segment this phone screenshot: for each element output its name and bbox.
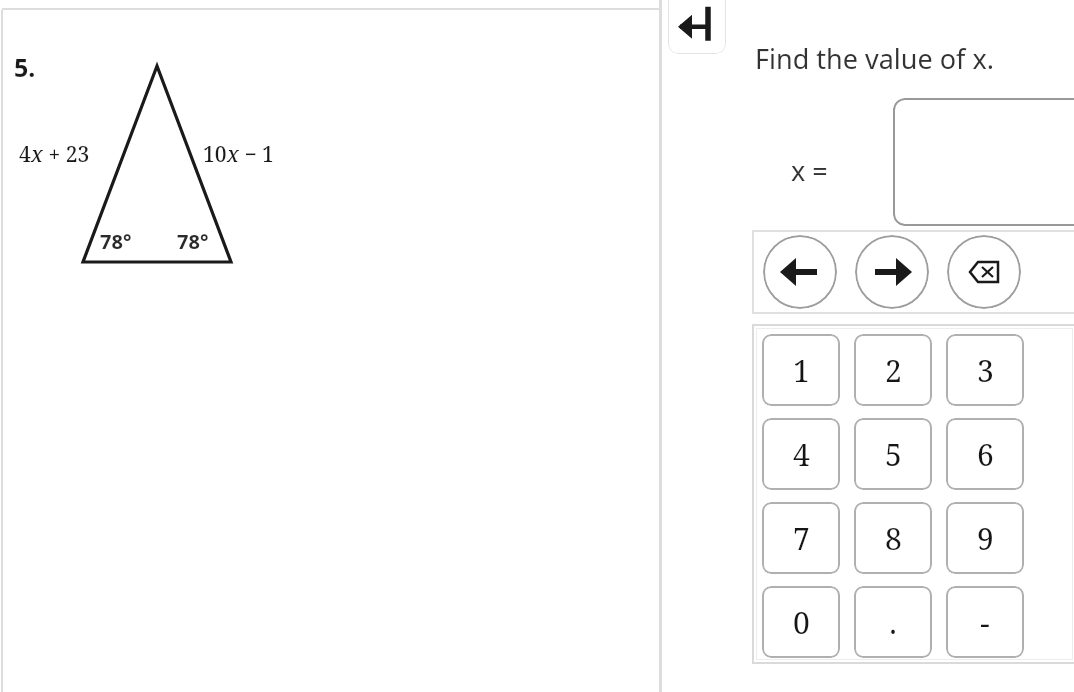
staticText: + 23 [43, 140, 90, 169]
staticText: 5. [14, 50, 36, 84]
staticText: 78° [100, 228, 132, 255]
staticText: 9 [977, 518, 994, 559]
button[interactable]: 4 [762, 418, 840, 490]
button[interactable]: 2 [854, 334, 932, 406]
staticText: x [31, 140, 43, 169]
staticText: 78° [177, 228, 209, 255]
staticText: . [889, 602, 897, 643]
staticText: 7 [793, 518, 810, 559]
button[interactable]: - [946, 586, 1024, 658]
staticText: 6 [977, 434, 994, 475]
staticText: 8 [885, 518, 902, 559]
button[interactable]: 8 [854, 502, 932, 574]
staticText: Find the value of x. [755, 40, 994, 77]
button[interactable]: Backspace [947, 235, 1021, 309]
staticText: x [227, 140, 239, 169]
staticText: 10 [203, 140, 227, 169]
button[interactable]: 7 [762, 502, 840, 574]
button[interactable]: 9 [946, 502, 1024, 574]
button[interactable]: Next [855, 235, 929, 309]
staticText: 4 [19, 140, 31, 169]
staticText: 0 [793, 602, 810, 643]
button[interactable]: 1 [762, 334, 840, 406]
button[interactable]: . [854, 586, 932, 658]
staticText: 5 [885, 434, 902, 475]
staticText: 4 [793, 434, 810, 475]
staticText: x = [791, 152, 828, 189]
button[interactable]: 0 [762, 586, 840, 658]
button[interactable]: Previous [763, 235, 837, 309]
staticText: 1 [793, 350, 810, 391]
staticText: − 1 [239, 140, 274, 169]
button[interactable]: Answer field [893, 98, 1074, 226]
button[interactable]: 6 [946, 418, 1024, 490]
staticText: - [980, 602, 990, 643]
button[interactable]: Back [668, 0, 726, 54]
staticText: 2 [885, 350, 902, 391]
button[interactable]: 3 [946, 334, 1024, 406]
staticText: 3 [977, 350, 994, 391]
button[interactable]: 5 [854, 418, 932, 490]
